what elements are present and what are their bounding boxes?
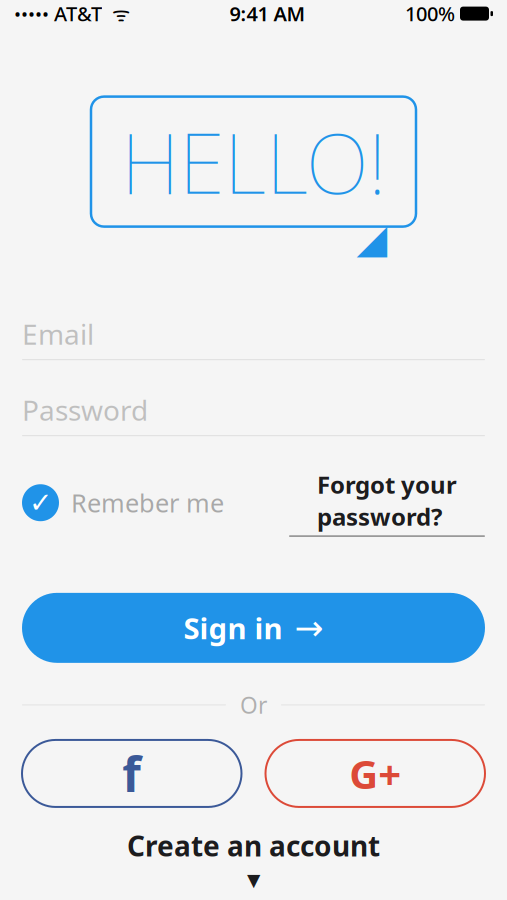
staticText: AT&T — [49, 0, 102, 27]
staticText: → — [294, 608, 323, 647]
button[interactable]: Create an account — [0, 827, 507, 894]
staticText: ✓ — [29, 487, 52, 519]
staticText: f — [122, 742, 141, 805]
staticText: Password — [22, 391, 148, 429]
button[interactable]: Sign in with Google Plus — [265, 740, 485, 807]
button[interactable]: Forgot your password? — [289, 469, 485, 537]
staticText: Create an account — [127, 827, 380, 864]
staticText: 9:41 AM — [229, 0, 305, 27]
staticText: Or — [240, 690, 267, 720]
staticText: Remeber me — [71, 486, 224, 519]
staticText: G+ — [349, 747, 401, 800]
staticText: Sign in — [183, 608, 282, 647]
staticText: ᯤ — [102, 0, 130, 27]
button[interactable]: Sign in with Facebook — [22, 740, 241, 807]
staticText: 100% — [405, 0, 455, 27]
staticText: ◢ — [356, 216, 387, 261]
button[interactable]: ✓ — [22, 484, 224, 521]
button[interactable]: Sign in — [22, 593, 485, 663]
staticText: ▾ — [247, 864, 260, 894]
staticText: ••••• — [14, 1, 49, 26]
staticText: Email — [22, 315, 94, 353]
staticText: Forgot your password? — [317, 469, 457, 532]
staticText: HELLO! — [121, 107, 386, 216]
